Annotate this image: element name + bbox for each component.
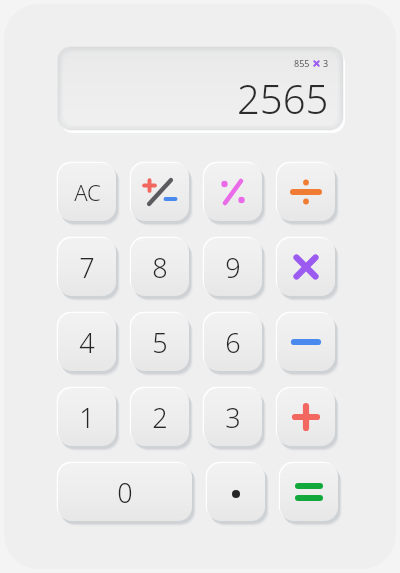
staticText: 6 — [225, 324, 241, 361]
button[interactable]: Multiply — [277, 238, 335, 296]
button[interactable]: 2 — [131, 388, 189, 446]
staticText: 8 — [152, 249, 168, 286]
button[interactable]: 7 — [58, 238, 116, 296]
button[interactable]: 8 — [131, 238, 189, 296]
button[interactable]: 9 — [204, 238, 262, 296]
staticText: 0 — [117, 474, 133, 511]
button[interactable]: 1 — [58, 388, 116, 446]
button[interactable]: AC — [58, 163, 116, 221]
button[interactable]: 6 — [204, 313, 262, 371]
staticText: 5 — [152, 324, 168, 361]
button[interactable]: Divide — [277, 163, 335, 221]
staticText: 2 — [152, 399, 168, 436]
button[interactable]: 4 — [58, 313, 116, 371]
button[interactable]: 3 — [204, 388, 262, 446]
button[interactable]: Percent — [204, 163, 262, 221]
staticText: AC — [74, 177, 101, 207]
button[interactable]: Plus minus sign — [131, 163, 189, 221]
staticText: 4 — [79, 324, 95, 361]
staticText: 3 — [323, 57, 329, 69]
staticText: 855 — [294, 57, 310, 69]
staticText: 7 — [79, 249, 95, 286]
button[interactable]: 5 — [131, 313, 189, 371]
button[interactable]: Minus — [277, 313, 335, 371]
staticText: 2565 — [237, 71, 329, 125]
button[interactable]: Decimal point — [207, 463, 265, 521]
staticText: 9 — [225, 249, 241, 286]
button[interactable]: Plus — [277, 388, 335, 446]
button[interactable]: Equals — [280, 463, 338, 521]
staticText: 3 — [225, 399, 241, 436]
staticText: 1 — [79, 399, 95, 436]
button[interactable]: 0 — [58, 463, 192, 521]
